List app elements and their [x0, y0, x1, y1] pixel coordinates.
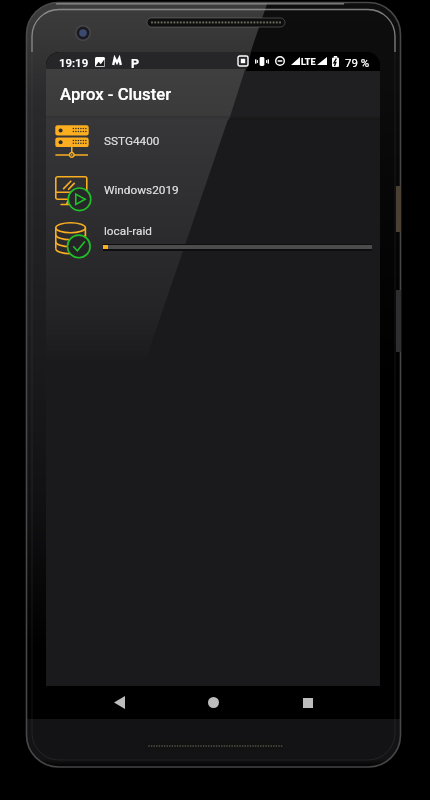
button[interactable]: Aprox - Cluster	[46, 71, 380, 120]
staticText: 79 %	[345, 56, 370, 69]
staticText: 19:19	[59, 56, 89, 69]
button[interactable]: SSTG4400	[46, 120, 380, 169]
staticText: local-raid	[104, 224, 153, 238]
staticText: P	[131, 56, 140, 71]
button[interactable]: Back	[97, 686, 141, 719]
button[interactable]: local-raid	[46, 218, 380, 268]
button[interactable]: Recents	[286, 686, 330, 719]
button[interactable]: Home	[191, 686, 235, 719]
staticText: Windows2019	[104, 183, 179, 197]
staticText: LTE	[301, 57, 316, 68]
staticText: SSTG4400	[104, 134, 160, 148]
staticText: Aprox - Cluster	[60, 85, 172, 105]
button[interactable]: Windows2019	[46, 169, 380, 218]
